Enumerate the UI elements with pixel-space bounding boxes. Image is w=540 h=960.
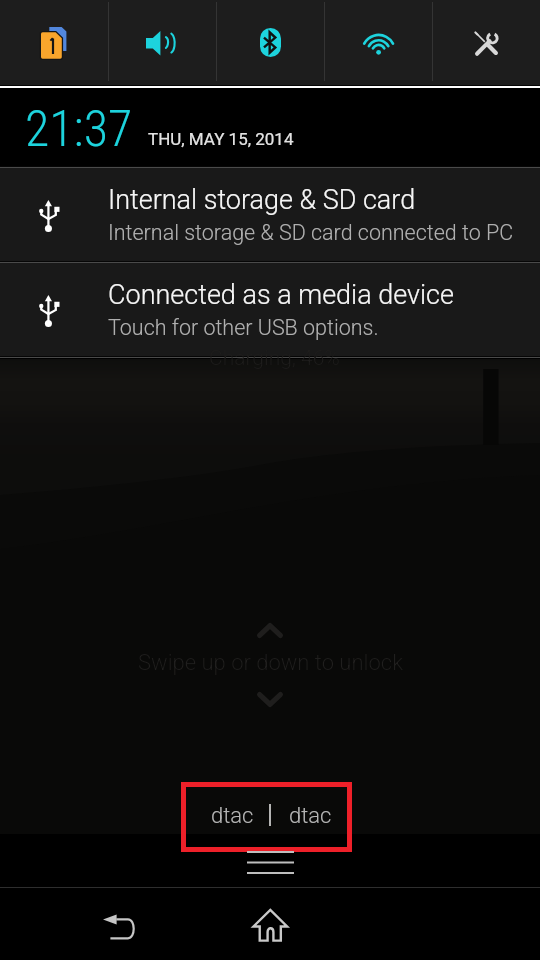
staticText: Internal storage & SD card [108,184,416,216]
button[interactable]: SIM cards [0,0,108,85]
button[interactable]: Bluetooth [217,0,324,85]
button[interactable]: Wi-Fi [325,0,432,85]
staticText: Touch for other USB options. [108,315,379,340]
button[interactable]: Connected as a media device [0,263,540,356]
button[interactable]: Back [77,894,163,960]
button[interactable]: Settings [433,0,540,85]
button[interactable]: Home [227,890,313,960]
staticText: Charging, 46% [209,346,340,371]
staticText: dtac [289,803,332,829]
staticText: THU, MAY 15, 2014 [148,129,294,149]
staticText: Internal storage & SD card connected to … [108,220,514,245]
button[interactable]: Volume [109,0,216,85]
staticText: 21:37 [25,100,133,159]
staticText: Swipe up or down to unlock [138,650,403,676]
button[interactable]: dtac [181,782,352,852]
button[interactable]: Internal storage & SD card [0,168,540,261]
staticText: dtac [211,803,254,829]
staticText: Connected as a media device [108,279,454,311]
